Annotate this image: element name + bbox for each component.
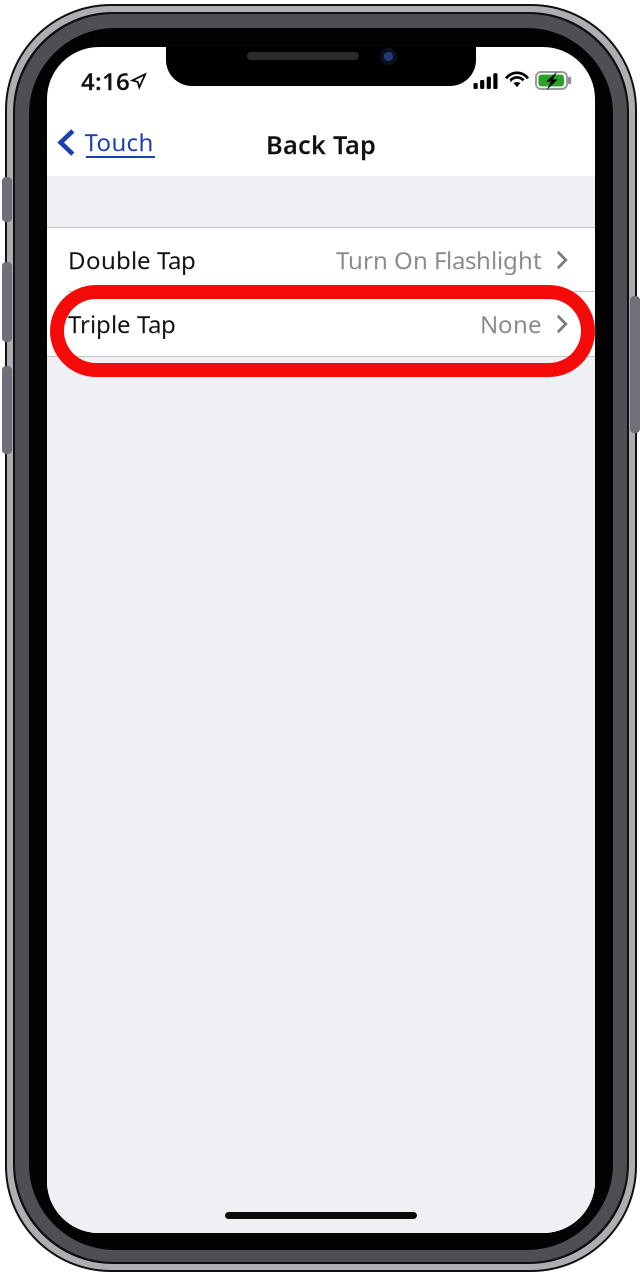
- button[interactable]: Triple Tap: [47, 292, 595, 356]
- staticText: Triple Tap: [68, 308, 176, 340]
- button[interactable]: Touch: [54, 125, 166, 165]
- staticText: None: [480, 308, 542, 340]
- staticText: Turn On Flashlight: [336, 244, 542, 276]
- staticText: 4:16: [81, 65, 130, 97]
- staticText: Back Tap: [266, 128, 376, 161]
- button[interactable]: Double Tap: [47, 228, 595, 292]
- staticText: Double Tap: [68, 244, 196, 276]
- staticText: Touch: [84, 126, 153, 158]
